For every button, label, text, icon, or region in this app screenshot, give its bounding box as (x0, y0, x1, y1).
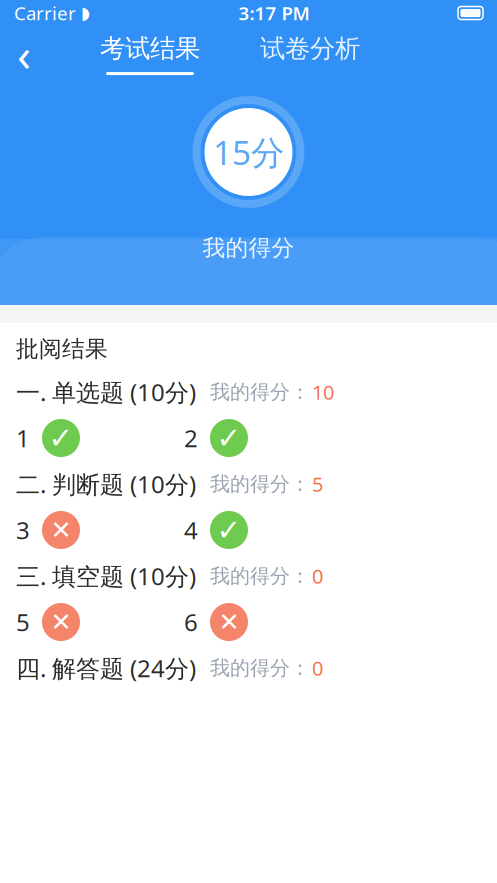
staticText: 4 (184, 514, 198, 546)
staticText: 3 (16, 514, 30, 546)
staticText: 15分 (213, 130, 284, 174)
staticText: 我的得分： (210, 472, 310, 496)
staticText: 5 (312, 471, 323, 497)
staticText: 5 (16, 606, 30, 638)
button[interactable]: 考试结果 (88, 26, 212, 82)
staticText: ✕ (218, 608, 239, 636)
staticText: ◗ (81, 3, 90, 23)
staticText: 0 (312, 655, 323, 681)
staticText: ✓ (216, 513, 241, 547)
staticText: 10 (312, 379, 334, 405)
staticText: Carrier (14, 1, 76, 25)
staticText: ✕ (50, 516, 71, 544)
staticText: 1 (16, 422, 30, 454)
button[interactable]: 试卷分析 (248, 26, 372, 82)
staticText: ✓ (216, 421, 241, 455)
staticText: 四. 解答题 (24分) (16, 652, 196, 684)
staticText: 2 (184, 422, 198, 454)
staticText: 二. 判断题 (10分) (16, 468, 196, 500)
staticText: 一. 单选题 (10分) (16, 376, 196, 408)
staticText: 我的得分： (210, 656, 310, 680)
staticText: ✓ (48, 421, 73, 455)
staticText: 我的得分： (210, 564, 310, 588)
staticText: 三. 填空题 (10分) (16, 560, 196, 592)
button[interactable]: Back (0, 29, 48, 79)
staticText: 6 (184, 606, 198, 638)
staticText: 考试结果 (100, 33, 200, 64)
staticText: ✕ (50, 608, 71, 636)
staticText: 我的得分： (210, 380, 310, 404)
staticText: 0 (312, 563, 323, 589)
staticText: 试卷分析 (260, 33, 360, 64)
staticText: ‹ (17, 24, 31, 84)
staticText: 3:17 PM (238, 1, 309, 25)
staticText: 批阅结果 (16, 335, 108, 363)
staticText: 我的得分 (202, 234, 294, 262)
